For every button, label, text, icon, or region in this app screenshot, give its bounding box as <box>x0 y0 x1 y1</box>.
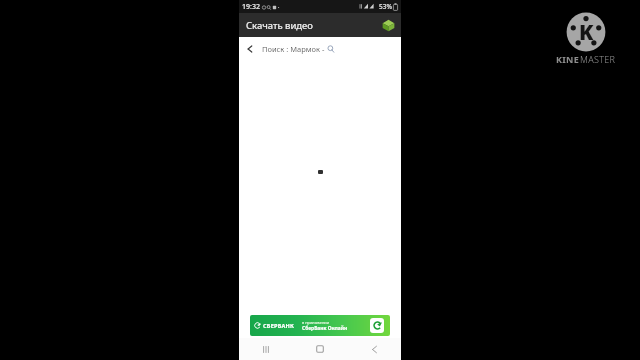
staticText: Поиск : Мармок - <box>262 44 325 54</box>
staticText: в приложении <box>302 320 330 325</box>
button[interactable]: Back <box>239 37 401 60</box>
staticText: KINE <box>556 53 580 65</box>
staticText: 19:32 <box>242 2 260 12</box>
button[interactable]: Recent apps <box>239 338 293 360</box>
button[interactable]: Sberbank advertisement <box>250 315 390 336</box>
staticText: СберБанк Онлайн <box>302 325 348 332</box>
staticText: 53% <box>379 2 392 11</box>
staticText: K <box>579 18 594 47</box>
staticText: Скачать видео <box>246 19 313 32</box>
staticText: СБЕРБАНК <box>263 322 295 330</box>
button[interactable]: Home <box>293 338 347 360</box>
button[interactable]: Back <box>347 338 401 360</box>
staticText: MASTER <box>580 53 616 65</box>
button[interactable]: Back <box>243 42 257 56</box>
button[interactable]: Open Sberbank Online <box>370 318 384 333</box>
button[interactable]: Downloads <box>380 17 396 33</box>
